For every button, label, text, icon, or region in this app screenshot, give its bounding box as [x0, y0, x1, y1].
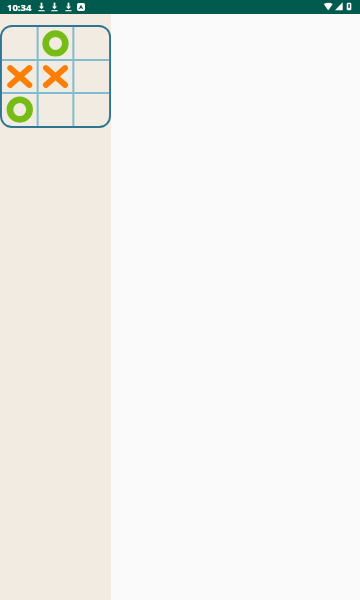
staticText: 10:34 [7, 1, 32, 14]
button[interactable]: Tic tac toe board [0, 25, 111, 128]
